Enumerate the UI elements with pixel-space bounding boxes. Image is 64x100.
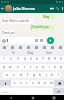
button[interactable]: i: [46, 64, 52, 70]
button[interactable]: .: [46, 88, 53, 94]
button[interactable]: 2: [7, 56, 14, 62]
button[interactable]: Backspace: [54, 80, 64, 86]
staticText: d: [20, 73, 22, 77]
button[interactable]: t: [28, 64, 34, 70]
staticText: 2: [10, 57, 12, 61]
button[interactable]: Video call: [49, 4, 55, 13]
button[interactable]: f: [24, 72, 31, 78]
button[interactable]: 8: [46, 56, 52, 62]
button[interactable]: o: [52, 64, 58, 70]
staticText: j: [46, 73, 47, 77]
staticText: w: [9, 65, 12, 69]
button[interactable]: GIF: [8, 44, 16, 50]
staticText: p: [60, 65, 62, 69]
button[interactable]: 4: [21, 56, 28, 62]
staticText: Okay: [43, 15, 50, 19]
button[interactable]: u: [40, 64, 46, 70]
button[interactable]: ?123: [0, 88, 10, 94]
staticText: 3: [17, 57, 19, 61]
staticText: a: [6, 73, 8, 77]
staticText: g: [33, 73, 35, 77]
button[interactable]: y: [34, 64, 40, 70]
staticText: 8: [48, 57, 50, 61]
button[interactable]: Stop! Hold on, wait for me: [1, 19, 33, 24]
button[interactable]: Call: [55, 4, 60, 13]
button[interactable]: Home: [22, 95, 43, 100]
staticText: h: [39, 73, 41, 77]
button[interactable]: x: [18, 80, 24, 86]
button[interactable]: m: [48, 80, 54, 86]
button[interactable]: c: [24, 80, 30, 86]
staticText: r: [24, 65, 26, 69]
button[interactable]: Okay: [42, 14, 55, 19]
button[interactable]: 5: [28, 56, 34, 62]
button[interactable]: Sure: [46, 51, 52, 55]
staticText: z: [14, 81, 16, 85]
staticText: t: [30, 65, 32, 69]
staticText: Julia Sharma: [13, 6, 49, 11]
button[interactable]: Emoji: [0, 44, 8, 50]
staticText: i: [49, 65, 50, 69]
staticText: b: [38, 81, 40, 85]
button[interactable]: Shift: [0, 80, 11, 86]
button[interactable]: 3: [14, 56, 21, 62]
staticText: n: [44, 81, 46, 85]
staticText: Sure: [46, 51, 52, 55]
button[interactable]: More options: [60, 4, 64, 13]
button[interactable]: Recent apps: [43, 95, 64, 100]
staticText: l: [58, 73, 59, 77]
button[interactable]: Okay: [27, 51, 34, 55]
button[interactable]: e: [14, 64, 21, 70]
button[interactable]: v: [30, 80, 36, 86]
button[interactable]: Enter: [53, 88, 64, 94]
staticText: m: [50, 81, 53, 85]
button[interactable]: q: [0, 64, 7, 70]
button[interactable]: Search: [48, 44, 56, 50]
button[interactable]: w: [7, 64, 14, 70]
staticText: Okay: [27, 51, 34, 55]
button[interactable]: h: [37, 72, 43, 78]
button[interactable]: n: [42, 80, 48, 86]
button[interactable]: 6: [34, 56, 40, 62]
staticText: e: [17, 65, 19, 69]
button[interactable]: l: [55, 72, 61, 78]
staticText: ,: [13, 89, 14, 93]
button[interactable]: g: [31, 72, 37, 78]
button[interactable]: Settings: [32, 44, 40, 50]
button[interactable]: Hi: [12, 51, 15, 55]
button[interactable]: Back: [0, 4, 5, 13]
staticText: 9: [54, 57, 56, 61]
button[interactable]: 1: [0, 56, 7, 62]
staticText: I'll wait for you here: [31, 25, 55, 30]
button[interactable]: Send: [47, 37, 54, 44]
button[interactable]: Back: [0, 95, 22, 100]
button[interactable]: b: [36, 80, 42, 86]
button[interactable]: ,: [10, 88, 17, 94]
button[interactable]: Clipboard: [24, 44, 32, 50]
staticText: 5: [30, 57, 32, 61]
button[interactable]: 0: [58, 56, 64, 62]
staticText: 6: [36, 57, 38, 61]
button[interactable]: Thank you: [1, 30, 15, 35]
button[interactable]: [1, 37, 45, 44]
button[interactable]: k: [49, 72, 55, 78]
button[interactable]: d: [17, 72, 24, 78]
staticText: f: [27, 73, 29, 77]
staticText: x: [20, 81, 22, 85]
button[interactable]: p: [58, 64, 64, 70]
button[interactable]: j: [43, 72, 49, 78]
button[interactable]: More: [56, 44, 64, 50]
staticText: .: [49, 89, 50, 93]
staticText: 4: [24, 57, 26, 61]
button[interactable]: z: [11, 80, 18, 86]
button[interactable]: s: [10, 72, 17, 78]
button[interactable]: I'll wait for you here: [30, 25, 55, 30]
button[interactable]: a: [3, 72, 10, 78]
button[interactable]: Sticker: [16, 44, 24, 50]
button[interactable]: 7: [40, 56, 46, 62]
button[interactable]: r: [21, 64, 28, 70]
button[interactable]: Translate: [40, 44, 48, 50]
button[interactable]: 9: [52, 56, 58, 62]
staticText: y: [36, 65, 38, 69]
